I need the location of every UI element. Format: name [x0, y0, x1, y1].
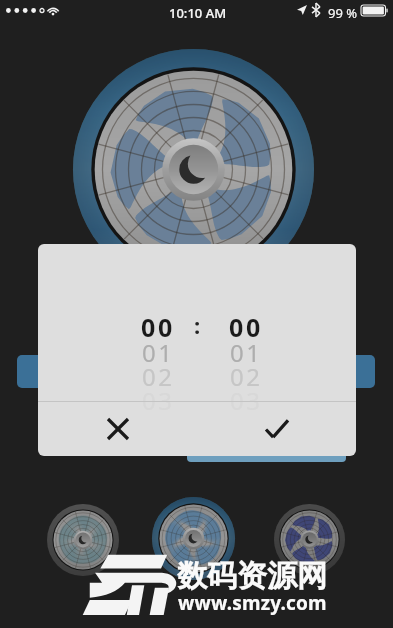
staticText: 01	[142, 336, 175, 369]
staticText: :	[194, 310, 201, 340]
staticText: 03	[142, 384, 175, 417]
staticText: 00	[141, 310, 175, 344]
button[interactable]: Fan style 1	[47, 504, 119, 576]
button[interactable]: Cancel	[38, 402, 197, 456]
staticText: 99 %	[328, 4, 358, 22]
staticText: 02	[142, 360, 175, 393]
button[interactable]: Confirm	[197, 402, 356, 456]
staticText: www.smzy.com	[178, 590, 327, 616]
staticText: 10:10 AM	[169, 4, 227, 22]
staticText: 02	[230, 360, 263, 393]
button[interactable]: Speed slider	[17, 355, 375, 388]
staticText: 数码资源网	[177, 557, 327, 595]
staticText: 01	[230, 336, 263, 369]
button[interactable]: Fan style 3	[274, 504, 345, 575]
button[interactable]: Fan style 2	[152, 497, 235, 580]
button[interactable]: Timer	[187, 450, 346, 462]
staticText: 03	[230, 384, 263, 417]
staticText: 00	[229, 310, 263, 344]
